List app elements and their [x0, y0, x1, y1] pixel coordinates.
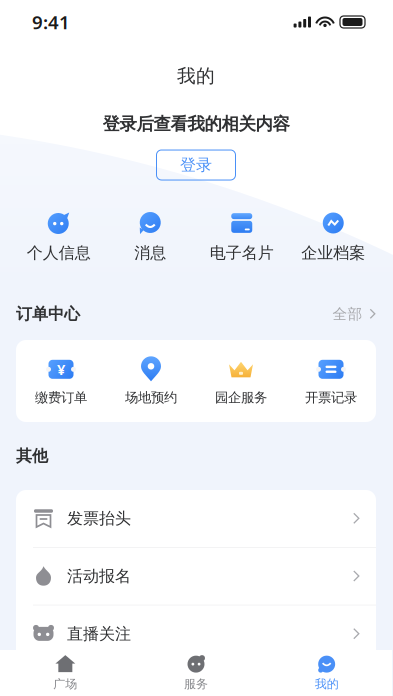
staticText: 订单中心 [16, 304, 80, 324]
staticText: 个人信息 [27, 243, 91, 263]
staticText: 全部 [332, 305, 362, 323]
staticText: 我的 [177, 64, 215, 87]
staticText: 直播关注 [67, 624, 131, 644]
button[interactable]: 消息 [104, 210, 196, 263]
staticText: 园企服务 [215, 389, 267, 406]
staticText: 登录 [180, 155, 212, 175]
button[interactable]: 直播关注 [16, 605, 376, 662]
button[interactable]: 园企服务 [196, 356, 286, 406]
staticText: 企业档案 [301, 243, 365, 263]
staticText: 场地预约 [125, 389, 177, 406]
button[interactable]: 广场 [0, 650, 131, 696]
button[interactable]: 我的 [261, 650, 392, 696]
button[interactable]: 电子名片 [196, 210, 287, 263]
staticText: ¥ [57, 360, 65, 379]
button[interactable]: 发票抬头 [16, 490, 376, 547]
staticText: 9:41 [32, 10, 70, 34]
button[interactable]: 企业档案 [287, 210, 379, 263]
button[interactable]: 场地预约 [106, 356, 196, 406]
button[interactable]: ¥ [16, 356, 106, 406]
button[interactable]: 登录 [156, 150, 235, 180]
staticText: 登录后查看我的相关内容 [102, 113, 289, 135]
staticText: 活动报名 [67, 566, 131, 586]
button[interactable]: 个人信息 [13, 210, 104, 263]
button[interactable]: 开票记录 [286, 356, 376, 406]
staticText: 发票抬头 [67, 509, 131, 528]
staticText: 我的 [315, 677, 339, 691]
staticText: 其他 [16, 446, 48, 466]
button[interactable]: 服务 [131, 650, 261, 696]
staticText: 消息 [134, 243, 166, 263]
staticText: 电子名片 [210, 243, 274, 263]
button[interactable]: 全部 [332, 305, 376, 323]
staticText: 缴费订单 [35, 389, 87, 406]
staticText: 服务 [184, 677, 208, 691]
button[interactable]: 活动报名 [16, 548, 376, 605]
staticText: 广场 [53, 677, 77, 691]
staticText: 开票记录 [305, 389, 357, 406]
